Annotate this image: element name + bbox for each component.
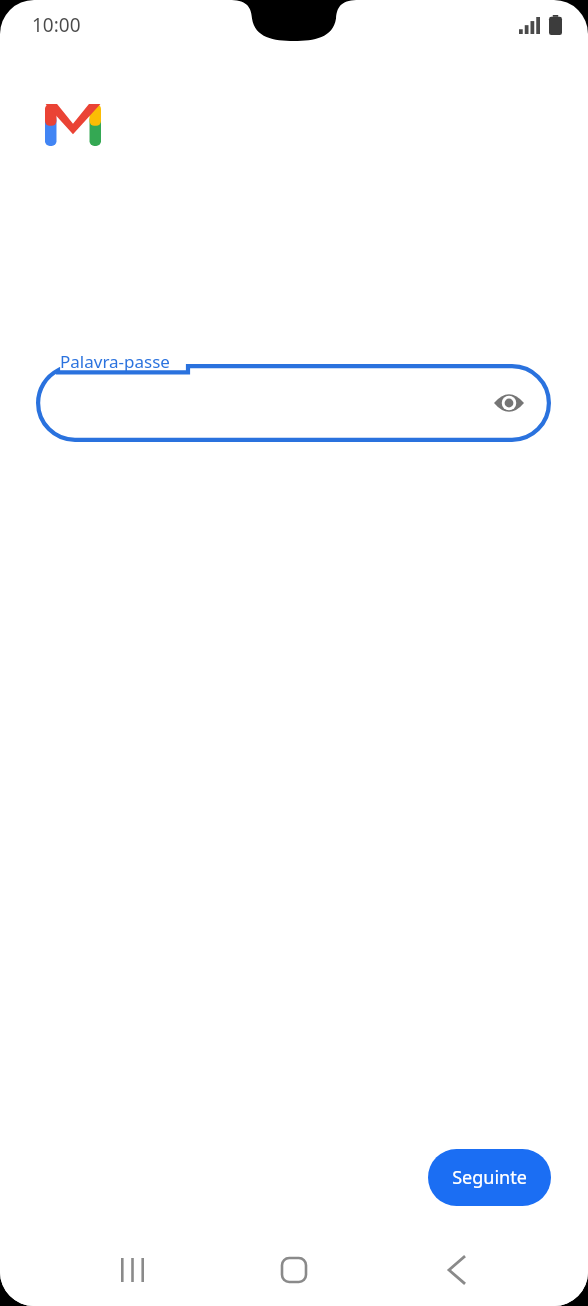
button[interactable]: Seguinte [428, 1149, 551, 1206]
staticText: 10:00 [32, 12, 81, 38]
staticText: Palavra-passe [60, 350, 170, 373]
button[interactable]: Voltar [428, 1242, 484, 1298]
button[interactable]: Recentes [104, 1242, 160, 1298]
button[interactable]: Início [266, 1242, 322, 1298]
button[interactable]: Palavra-passe [36, 350, 551, 442]
button[interactable]: Mostrar palavra-passe [489, 383, 529, 423]
staticText: Seguinte [452, 1165, 527, 1190]
